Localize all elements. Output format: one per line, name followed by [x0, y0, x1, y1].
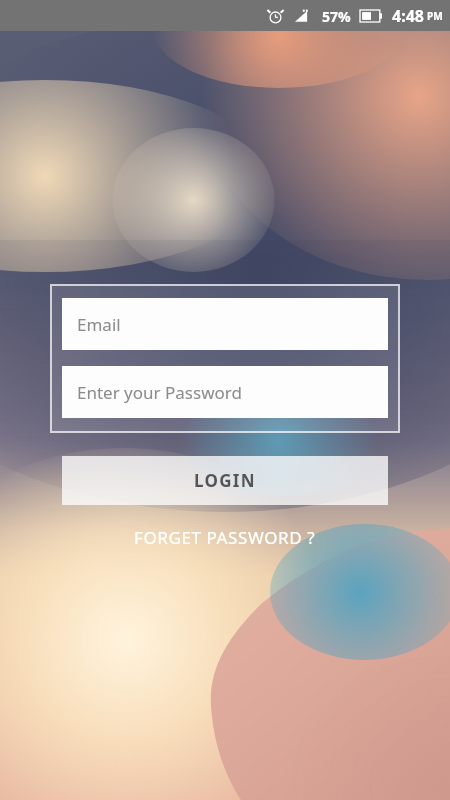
staticText: FORGET PASSWORD ? — [134, 526, 316, 549]
other: Alarm set — [268, 9, 283, 24]
staticText: LOGIN — [194, 469, 256, 492]
other: Battery 57 percent — [360, 10, 382, 22]
other: Mobile signal — [294, 8, 310, 24]
staticText: Email — [77, 313, 121, 336]
button[interactable]: LOGIN — [62, 456, 388, 505]
staticText: PM — [427, 9, 443, 23]
button[interactable]: Email — [62, 298, 388, 350]
staticText: Enter your Password — [77, 381, 242, 404]
staticText: 57% — [322, 7, 351, 26]
button[interactable]: Enter your Password — [62, 366, 388, 418]
staticText: 4:48 — [392, 5, 424, 27]
button[interactable]: FORGET PASSWORD ? — [120, 521, 330, 554]
